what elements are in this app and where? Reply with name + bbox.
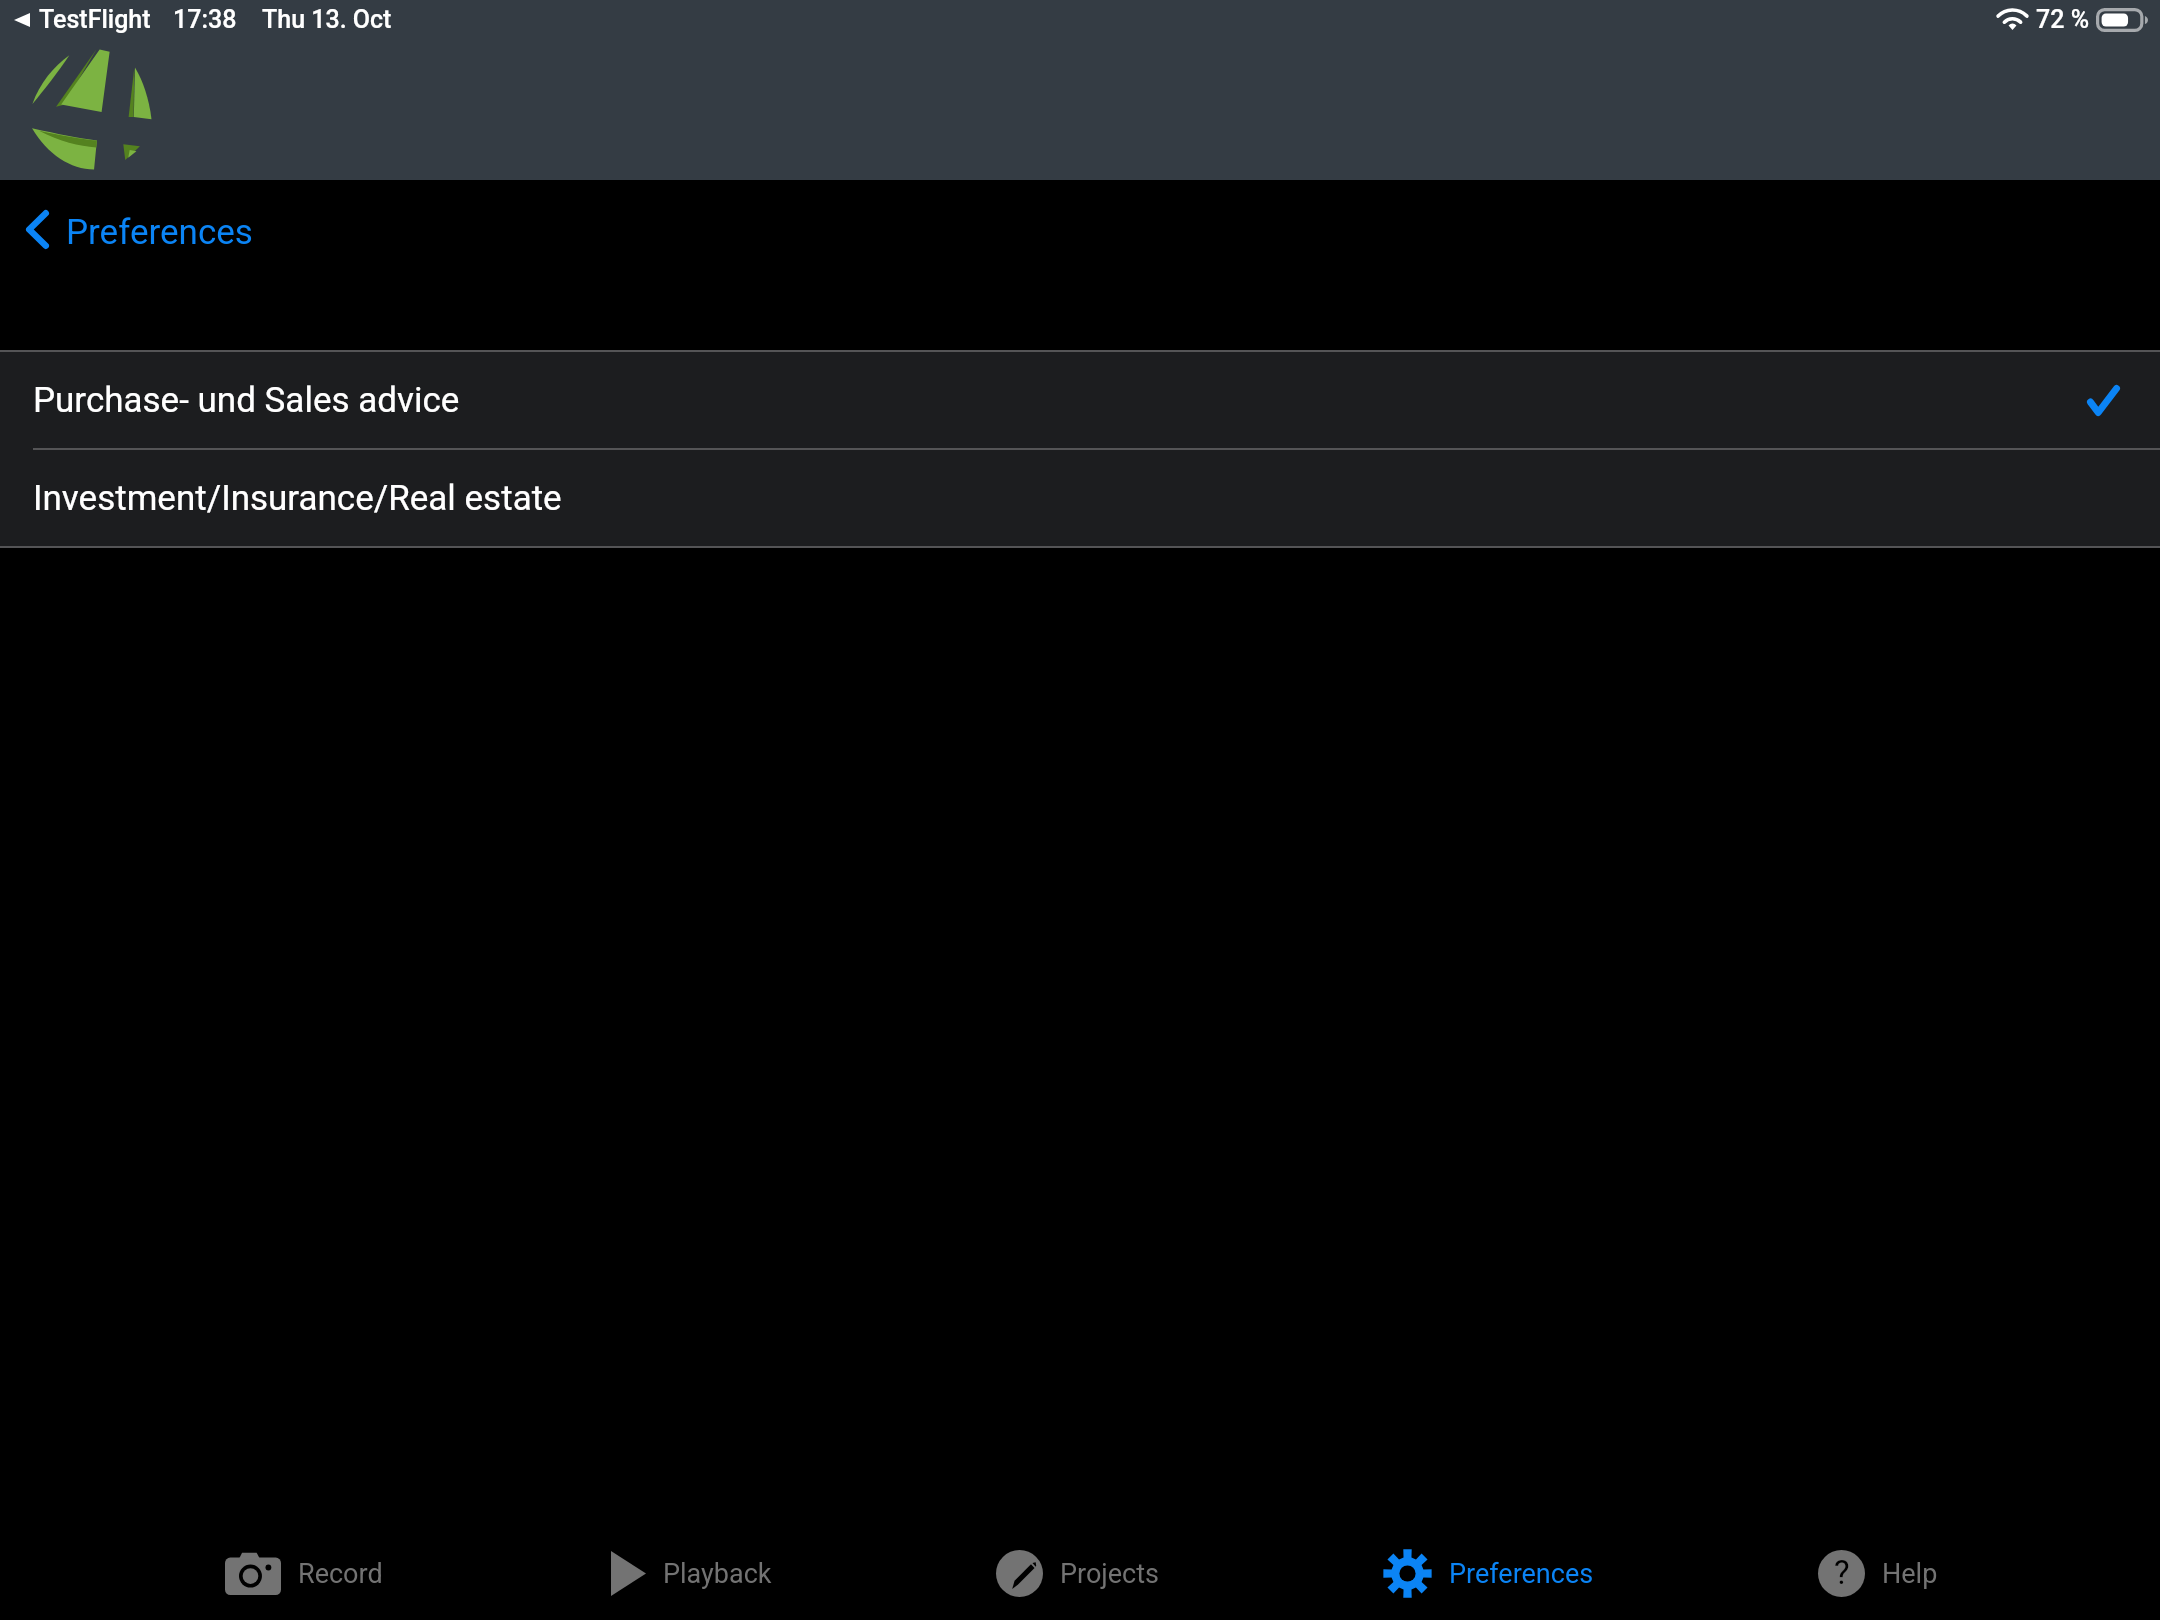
button[interactable]: Preferences [1383, 1549, 1594, 1598]
other: Preferences [1383, 1549, 1432, 1598]
staticText: ? [1834, 1553, 1850, 1592]
other: Selected [2087, 385, 2120, 416]
button[interactable]: Playback [611, 1551, 772, 1596]
staticText: Playback [663, 1558, 772, 1590]
button[interactable]: Preferences [12, 199, 267, 260]
other: Projects [996, 1550, 1043, 1597]
other: Playback [611, 1551, 646, 1596]
staticText: 17:38 [173, 5, 237, 34]
staticText: Help [1882, 1558, 1938, 1590]
button[interactable]: Investment/Insurance/Real estate [0, 450, 2160, 546]
staticText: Purchase- und Sales advice [33, 380, 460, 421]
other: Wi-Fi [1998, 9, 2027, 30]
staticText: 72 % [2036, 5, 2090, 34]
button[interactable]: Purchase- und Sales advice [0, 352, 2160, 448]
other: Record [225, 1552, 281, 1595]
button[interactable]: Help [1818, 1550, 1938, 1597]
staticText: Investment/Insurance/Real estate [33, 478, 562, 519]
staticText: Preferences [1449, 1558, 1594, 1590]
button[interactable]: Projects [996, 1550, 1159, 1597]
staticText: Preferences [66, 212, 253, 253]
staticText: Record [298, 1558, 383, 1590]
staticText: TestFlight [39, 5, 151, 34]
button[interactable]: Record [225, 1552, 383, 1595]
staticText: Thu 13. Oct [262, 5, 392, 34]
other: Help [1818, 1550, 1865, 1597]
staticText: Projects [1060, 1558, 1159, 1590]
